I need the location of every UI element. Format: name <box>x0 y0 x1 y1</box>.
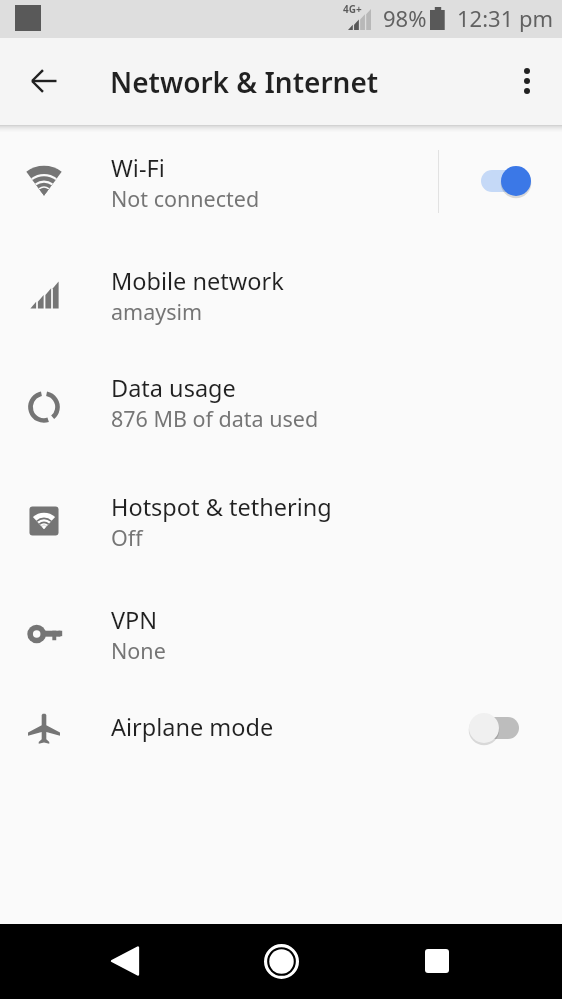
staticText: Airplane mode <box>111 711 274 743</box>
button[interactable]: Home <box>253 933 309 989</box>
button[interactable]: More options <box>503 57 551 105</box>
staticText: 4G+ <box>343 2 362 16</box>
staticText: Network & Internet <box>110 63 379 101</box>
button[interactable]: Mobile network <box>0 239 562 352</box>
staticText: Wi-Fi <box>111 152 165 184</box>
staticText: 876 MB of data used <box>111 404 319 433</box>
staticText: 12:31 pm <box>457 3 554 33</box>
button[interactable]: Wi-Fi <box>0 127 562 240</box>
staticText: Hotspot & tethering <box>111 491 332 523</box>
staticText: VPN <box>111 604 158 636</box>
staticText: Off <box>111 523 143 552</box>
button[interactable]: VPN <box>0 578 562 691</box>
staticText: Not connected <box>111 184 260 213</box>
button[interactable]: Back <box>97 933 153 989</box>
button[interactable]: Hotspot & tethering <box>0 465 562 578</box>
button[interactable]: Airplane mode <box>0 672 562 767</box>
button[interactable]: Airplane mode switch, off <box>466 704 524 752</box>
staticText: 98% <box>383 3 427 33</box>
staticText: Mobile network <box>111 265 284 297</box>
staticText: None <box>111 636 166 665</box>
staticText: Data usage <box>111 372 236 404</box>
staticText: amaysim <box>111 297 203 326</box>
button[interactable]: Data usage <box>0 351 562 464</box>
button[interactable]: Navigate up <box>20 57 68 105</box>
button[interactable]: Recent apps <box>409 933 465 989</box>
button[interactable]: Wi-Fi switch, on <box>474 157 532 205</box>
